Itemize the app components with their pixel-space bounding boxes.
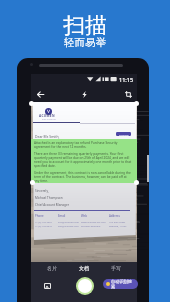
button[interactable]: 名片 [46, 265, 58, 271]
staticText: Attached is an explanatory tax refund Pu… [34, 141, 132, 149]
staticText: acumen.example [81, 224, 101, 227]
staticText: SOLUTIONS [42, 118, 56, 121]
staticText: 名片 [47, 265, 57, 271]
staticText: Under the agreement, this contract is no… [34, 171, 132, 183]
staticText: 轻而易举 [64, 36, 106, 49]
staticText: INVOICE [119, 133, 129, 136]
button[interactable]: 文档 [78, 265, 90, 271]
staticText: ACUMEN [39, 114, 55, 118]
staticText: info@acumen.com [58, 220, 80, 223]
staticText: Address [109, 214, 120, 218]
staticText: 文档 [79, 265, 89, 271]
staticText: 手写 [111, 265, 121, 271]
staticText: Email [58, 214, 66, 218]
staticText: +1 (0) 123 4567 [35, 220, 52, 223]
staticText: Dear Mr. Smith, [35, 134, 60, 139]
staticText: www.acumen-sol.com [81, 220, 106, 223]
staticText: Sincerely, [35, 189, 49, 193]
staticText: 自动识别搜索 [111, 279, 136, 289]
staticText: Phone [35, 214, 44, 218]
button[interactable]: Back [32, 86, 48, 102]
staticText: Web [81, 214, 87, 218]
staticText: 11:15 [119, 76, 134, 83]
staticText: 123 Elm Street [109, 220, 126, 223]
button[interactable]: 手写 [110, 265, 122, 271]
staticText: Redding, 11204 [109, 224, 127, 227]
button[interactable]: Flash [76, 86, 92, 102]
staticText: Michael Thompson [35, 196, 63, 200]
button[interactable]: 自动识别搜索 [103, 279, 138, 289]
button[interactable]: Crop [120, 86, 136, 102]
staticText: pay@acumen.com [58, 224, 79, 227]
staticText: +1 (0) 123 8910 [35, 224, 52, 227]
button[interactable]: Gallery [41, 279, 54, 292]
staticText: Chief Account Manager [35, 203, 69, 207]
staticText: There are three (3) remaining quarterly … [34, 152, 132, 168]
staticText: 扫描 [63, 12, 107, 40]
button[interactable]: Shutter [76, 277, 94, 295]
